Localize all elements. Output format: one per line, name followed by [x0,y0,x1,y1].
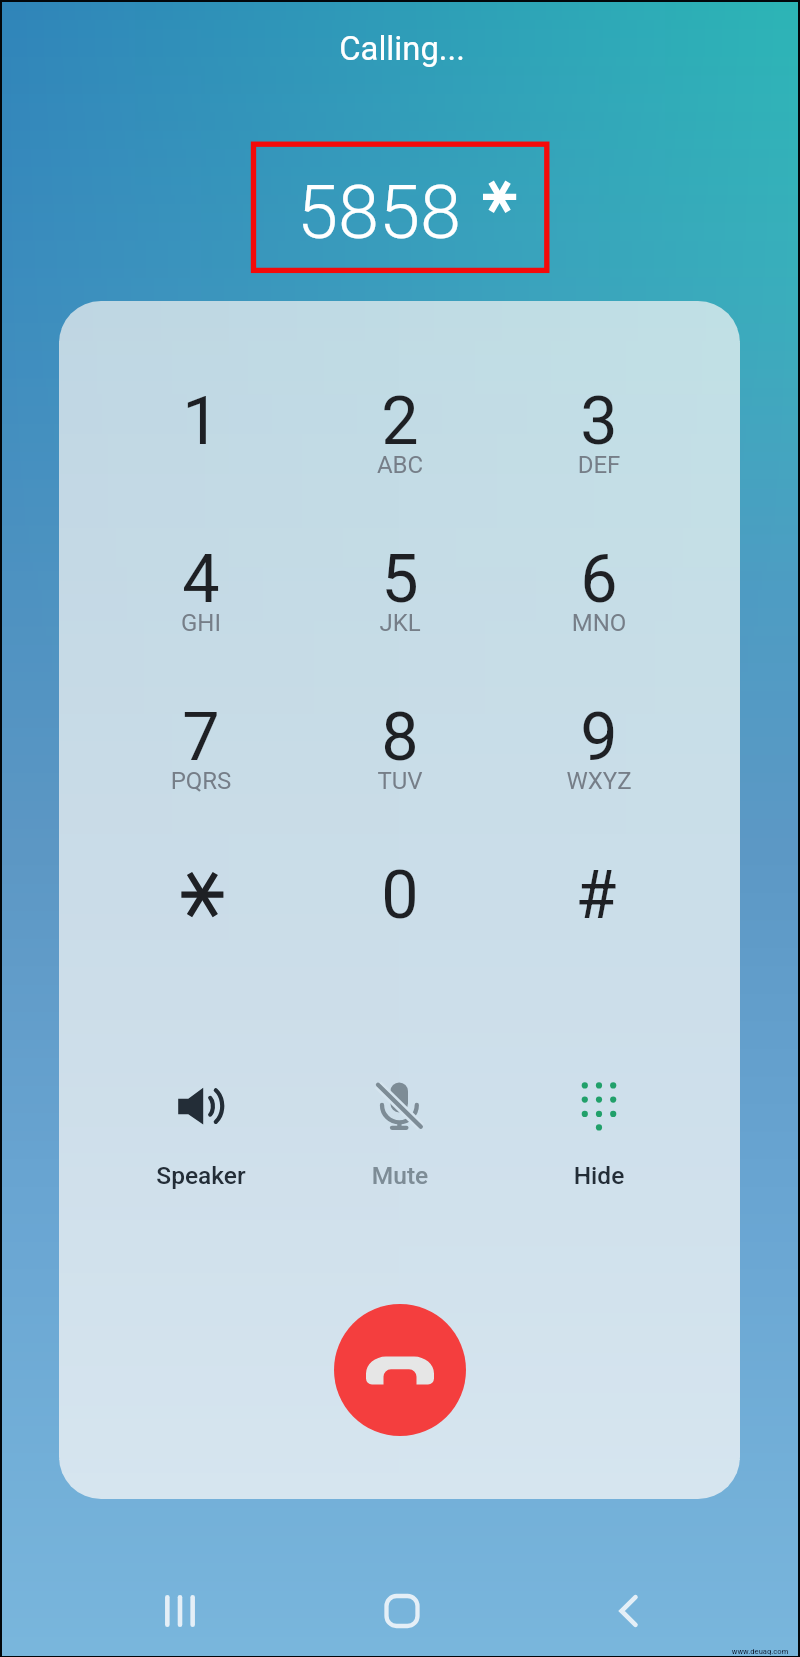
staticText: DEF [507,451,691,479]
button[interactable]: Speaker [109,1064,293,1204]
staticText: Hide [507,1161,691,1190]
staticText: 6 [507,540,691,618]
staticText: 5858 [179,169,579,256]
button[interactable]: 8 [308,664,492,808]
staticText: 4 [109,540,293,618]
staticText: 8 [308,698,492,776]
staticText: 1 [109,382,293,460]
staticText: 9 [507,698,691,776]
button[interactable]: 0 [308,822,492,966]
button[interactable]: 5 [308,506,492,650]
button[interactable]: Mute [308,1064,492,1204]
button[interactable]: Recent apps [132,1563,228,1657]
staticText: # [504,856,688,934]
button[interactable] [109,822,293,966]
staticText: TUV [308,767,492,795]
staticText: Calling... [202,30,602,68]
button[interactable]: # [507,822,691,966]
button[interactable]: 3 [507,348,691,492]
button[interactable]: 2 [308,348,492,492]
staticText: 3 [507,382,691,460]
button[interactable]: 4 [109,506,293,650]
button[interactable]: 6 [507,506,691,650]
staticText: 5 [308,540,492,618]
staticText: JKL [308,609,492,637]
staticText: PQRS [109,767,293,795]
staticText: WXYZ [507,767,691,795]
staticText: 7 [109,698,293,776]
button[interactable]: 1 [109,348,293,492]
staticText: MNO [507,609,691,637]
staticText: GHI [109,609,293,637]
button[interactable]: 7 [109,664,293,808]
staticText: www.deuaq.com [560,1647,800,1656]
staticText: ABC [308,451,492,479]
button[interactable]: Back [578,1563,674,1657]
button[interactable]: End call [334,1304,466,1436]
button[interactable]: 9 [507,664,691,808]
staticText: Speaker [109,1161,293,1190]
staticText: Mute [308,1161,492,1190]
staticText: 0 [308,856,492,934]
button[interactable]: Home [354,1563,450,1657]
staticText: 2 [308,382,492,460]
button[interactable]: Hide [507,1064,691,1204]
